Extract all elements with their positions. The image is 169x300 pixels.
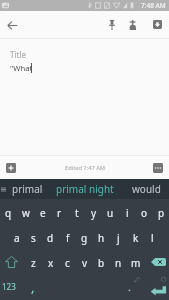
button[interactable]: Enter: [144, 274, 169, 299]
button[interactable]: p: [153, 199, 169, 224]
button[interactable]: 123: [0, 274, 25, 299]
staticText: s: [31, 231, 36, 245]
staticText: z: [31, 256, 36, 270]
button[interactable]: e: [34, 199, 51, 224]
staticText: "What: [10, 63, 33, 73]
staticText: n: [115, 256, 122, 270]
button[interactable]: m: [127, 249, 144, 274]
staticText: e: [40, 206, 46, 220]
button[interactable]: x: [42, 249, 59, 274]
staticText: x: [48, 256, 54, 270]
button[interactable]: primal: [9, 179, 45, 199]
staticText: Edited 7:47 AM: [65, 164, 105, 172]
staticText: g: [81, 231, 88, 245]
staticText: d: [47, 231, 54, 245]
button[interactable]: v: [76, 249, 93, 274]
staticText: 123: [2, 281, 16, 292]
button[interactable]: Add: [0, 157, 22, 179]
staticText: t: [75, 206, 79, 220]
staticText: v: [82, 256, 88, 270]
staticText: w: [22, 206, 30, 220]
button[interactable]: [124, 274, 144, 299]
button[interactable]: h: [93, 224, 110, 249]
staticText: Title: [10, 49, 26, 60]
button[interactable]: primal night: [52, 179, 118, 199]
button[interactable]: z: [25, 249, 42, 274]
button[interactable]: w: [17, 199, 34, 224]
staticText: primal: [12, 182, 43, 196]
staticText: r: [57, 206, 62, 220]
staticText: i: [126, 206, 129, 220]
button[interactable]: a: [8, 224, 25, 249]
button[interactable]: i: [119, 199, 136, 224]
staticText: ,: [31, 278, 35, 296]
staticText: o: [141, 206, 148, 220]
button[interactable]: would: [126, 179, 166, 199]
button[interactable]: More options: [147, 157, 169, 179]
staticText: 7:48 AM: [141, 1, 166, 10]
staticText: u: [107, 206, 114, 220]
button[interactable]: Shift: [0, 249, 25, 274]
button[interactable]: y: [85, 199, 102, 224]
button[interactable]: q: [0, 199, 17, 224]
button[interactable]: u: [102, 199, 119, 224]
button[interactable]: s: [25, 224, 42, 249]
button[interactable]: ,: [25, 274, 42, 299]
button[interactable]: n: [110, 249, 127, 274]
button[interactable]: g: [76, 224, 93, 249]
button[interactable]: Pin: [101, 12, 122, 37]
button[interactable]: Archive: [145, 12, 169, 37]
button[interactable]: k: [127, 224, 144, 249]
staticText: c: [65, 256, 70, 270]
staticText: p: [158, 206, 165, 220]
staticText: b: [98, 256, 105, 270]
button[interactable]: t: [68, 199, 85, 224]
button[interactable]: c: [59, 249, 76, 274]
button[interactable]: o: [136, 199, 153, 224]
staticText: primal night: [56, 182, 114, 196]
button[interactable]: Back: [1, 14, 23, 36]
staticText: y: [91, 206, 97, 220]
button[interactable]: b: [93, 249, 110, 274]
button[interactable]: r: [51, 199, 68, 224]
staticText: l: [151, 231, 154, 245]
button[interactable]: Reminder: [120, 12, 144, 37]
button[interactable]: Backspace: [144, 249, 169, 274]
staticText: j: [117, 231, 120, 245]
staticText: would: [132, 182, 161, 196]
button[interactable]: j: [110, 224, 127, 249]
staticText: m: [131, 256, 141, 270]
staticText: k: [133, 231, 139, 245]
staticText: f: [66, 231, 70, 245]
button[interactable]: f: [59, 224, 76, 249]
staticText: h: [98, 231, 105, 245]
staticText: a: [14, 231, 20, 245]
staticText: q: [5, 206, 12, 220]
button[interactable]: d: [42, 224, 59, 249]
button[interactable]: l: [144, 224, 161, 249]
